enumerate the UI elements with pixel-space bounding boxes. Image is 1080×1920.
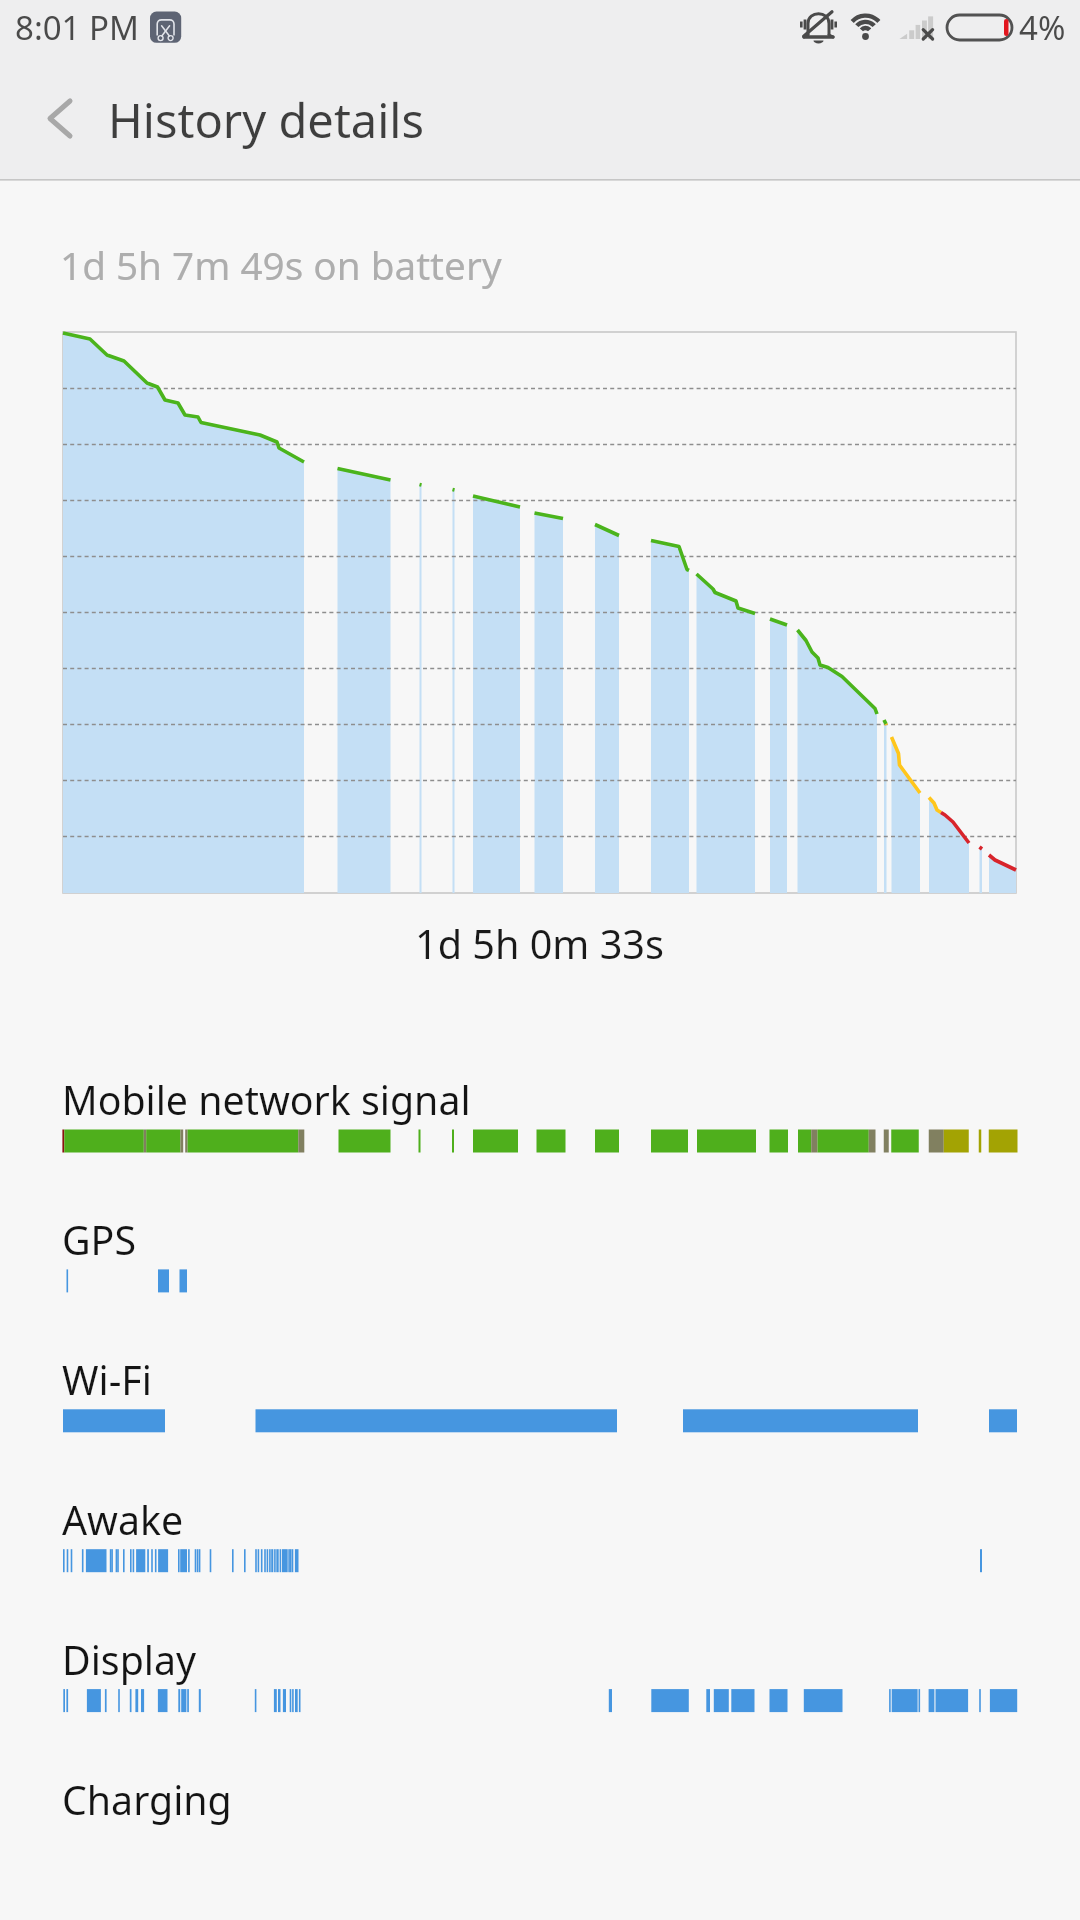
button[interactable]: GPS: [0, 1205, 1080, 1335]
staticText: Display: [62, 1633, 197, 1687]
button[interactable]: History details: [104, 57, 604, 179]
staticText: 4%: [1019, 5, 1066, 50]
staticText: 8:01 PM: [15, 5, 139, 50]
button[interactable]: Back: [16, 57, 104, 179]
button[interactable]: Awake: [0, 1485, 1080, 1615]
staticText: 1d 5h 7m 49s on battery: [60, 239, 502, 292]
button[interactable]: Wi-Fi: [0, 1345, 1080, 1475]
staticText: Wi-Fi: [62, 1353, 152, 1407]
staticText: Awake: [62, 1493, 184, 1547]
staticText: 1d 5h 0m 33s: [415, 917, 664, 971]
staticText: History details: [108, 88, 424, 152]
staticText: Charging: [62, 1773, 232, 1827]
button[interactable]: Display: [0, 1625, 1080, 1755]
button[interactable]: Mobile network signal: [0, 1065, 1080, 1195]
button[interactable]: Charging: [0, 1765, 1080, 1895]
staticText: Mobile network signal: [62, 1073, 471, 1127]
staticText: GPS: [62, 1213, 136, 1267]
